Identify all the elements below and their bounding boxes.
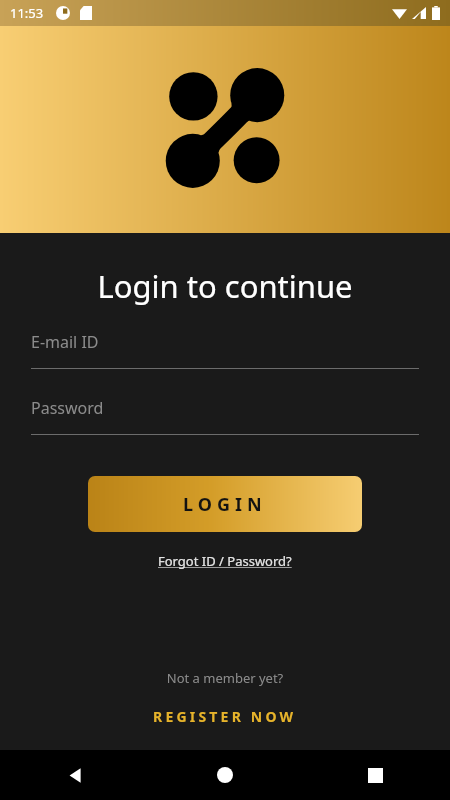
- other: App logo: [163, 66, 287, 190]
- staticText: Forgot ID / Password?: [158, 552, 292, 570]
- button[interactable]: Home: [150, 750, 300, 800]
- button[interactable]: LOGIN: [88, 476, 362, 532]
- staticText: Login to continue: [0, 265, 450, 307]
- staticText: E-mail ID: [31, 331, 99, 353]
- staticText: Password: [31, 397, 104, 419]
- button[interactable]: Recent apps: [300, 750, 450, 800]
- staticText: REGISTER NOW: [153, 707, 297, 726]
- staticText: Not a member yet?: [0, 669, 450, 687]
- button[interactable]: Forgot ID / Password?: [152, 550, 298, 572]
- staticText: 11:53: [10, 4, 44, 22]
- button[interactable]: Password: [31, 397, 419, 435]
- button[interactable]: E-mail ID: [31, 331, 419, 369]
- button[interactable]: REGISTER NOW: [145, 704, 305, 729]
- staticText: LOGIN: [183, 492, 267, 517]
- button[interactable]: Back: [0, 750, 150, 800]
